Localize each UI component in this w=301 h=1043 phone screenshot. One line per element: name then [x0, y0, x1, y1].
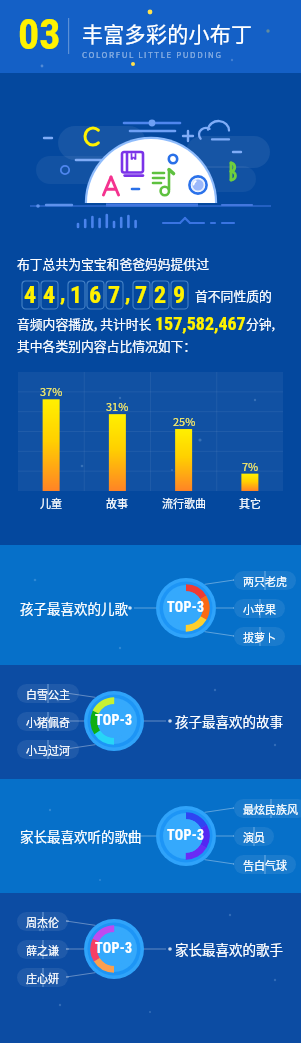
staticText: 小苹果: [243, 601, 276, 617]
staticText: 31%: [106, 398, 129, 414]
staticText: ,: [60, 281, 66, 307]
button[interactable]: 薛之谦: [17, 940, 68, 959]
staticText: 37%: [40, 383, 63, 399]
button[interactable]: 白雪公主: [17, 684, 79, 703]
staticText: 分钟,: [246, 314, 276, 333]
button[interactable]: 演员: [234, 827, 274, 846]
button[interactable]: 小苹果: [234, 599, 285, 618]
staticText: 布丁总共为宝宝和爸爸妈妈提供过: [17, 254, 209, 273]
staticText: 7: [108, 281, 121, 309]
button[interactable]: 03: [18, 13, 253, 62]
staticText: ,: [125, 281, 131, 307]
staticText: 小猪佩奇: [26, 714, 70, 730]
staticText: TOP-3: [167, 599, 205, 615]
button[interactable]: 告白气球: [234, 855, 296, 874]
staticText: 儿童: [40, 495, 62, 511]
staticText: 25%: [173, 413, 196, 429]
button[interactable]: 孩子最喜欢的儿歌: [20, 598, 128, 618]
staticText: 白雪公主: [26, 686, 70, 702]
staticText: 薛之谦: [26, 942, 59, 958]
staticText: 157,582,467: [155, 313, 246, 334]
staticText: 其中各类别内容占比情况如下：: [17, 336, 197, 355]
staticText: 庄心妍: [26, 970, 59, 986]
button[interactable]: 小猪佩奇: [17, 712, 79, 731]
button[interactable]: TOP-3: [88, 712, 140, 728]
staticText: 6: [89, 281, 102, 309]
staticText: 音频内容播放, 共计时长: [17, 314, 155, 333]
staticText: 丰富多彩的小布丁: [82, 18, 253, 48]
button[interactable]: 家长最喜欢听的歌曲: [20, 826, 142, 846]
staticText: 演员: [243, 829, 265, 845]
staticText: 流行歌曲: [162, 495, 206, 511]
button[interactable]: TOP-3: [160, 827, 212, 843]
staticText: 故事: [106, 495, 128, 511]
staticText: 4: [43, 281, 56, 309]
staticText: 告白气球: [243, 857, 287, 873]
button[interactable]: 拔萝卜: [234, 627, 285, 646]
button[interactable]: 最炫民族风: [234, 799, 301, 818]
button[interactable]: TOP-3: [88, 940, 140, 956]
staticText: 03: [18, 10, 61, 59]
staticText: 家长最喜欢的歌手: [175, 939, 283, 959]
staticText: 拔萝卜: [243, 629, 276, 645]
staticText: 2: [154, 281, 167, 309]
staticText: TOP-3: [95, 940, 133, 956]
staticText: 家长最喜欢听的歌曲: [20, 826, 142, 846]
staticText: 两只老虎: [243, 573, 287, 589]
button[interactable]: 孩子最喜欢的故事: [175, 711, 283, 731]
staticText: 小马过河: [26, 742, 70, 758]
staticText: 7: [135, 281, 148, 309]
staticText: 1: [70, 281, 83, 309]
staticText: 最炫民族风: [243, 801, 298, 817]
staticText: 其它: [239, 495, 261, 511]
staticText: 周杰伦: [26, 914, 59, 930]
staticText: 首不同性质的: [195, 286, 272, 305]
button[interactable]: 家长最喜欢的歌手: [175, 939, 283, 959]
staticText: TOP-3: [95, 712, 133, 728]
staticText: COLORFUL LITTLE PUDDING: [82, 49, 223, 61]
staticText: 7%: [242, 458, 259, 474]
staticText: 4: [24, 281, 37, 309]
staticText: 9: [173, 281, 186, 309]
button[interactable]: 小马过河: [17, 740, 79, 759]
button[interactable]: 庄心妍: [17, 968, 68, 987]
button[interactable]: 周杰伦: [17, 912, 68, 931]
staticText: 孩子最喜欢的儿歌: [20, 598, 128, 618]
button[interactable]: TOP-3: [160, 599, 212, 615]
staticText: TOP-3: [167, 827, 205, 843]
staticText: 孩子最喜欢的故事: [175, 711, 283, 731]
button[interactable]: 两只老虎: [234, 571, 296, 590]
